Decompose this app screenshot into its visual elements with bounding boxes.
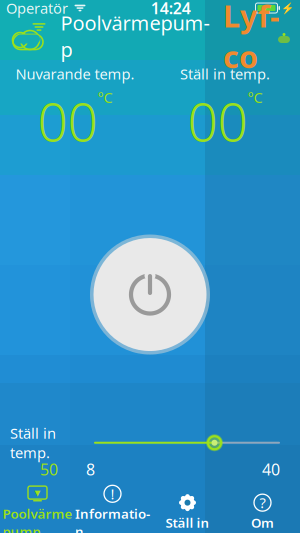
staticText: 00 (37, 85, 97, 156)
staticText: ▾ (34, 486, 40, 499)
staticText: Poolvärmepump (60, 9, 209, 62)
staticText: Ställ in temp. (180, 64, 270, 83)
staticText: °C (97, 87, 112, 107)
staticText: 40 (262, 459, 280, 480)
staticText: Om (251, 514, 274, 531)
staticText: 00 (187, 85, 247, 156)
button[interactable]: Av och på (90, 234, 210, 354)
button[interactable]: Lyfco (220, 19, 300, 53)
button[interactable]: Ställ in (150, 492, 225, 533)
staticText: Ställ in (165, 514, 209, 531)
staticText: 14:24 (151, 0, 191, 19)
staticText: ⚡ (281, 2, 294, 14)
staticText: Information (75, 505, 150, 533)
button[interactable]: ! (75, 492, 150, 533)
staticText: Poolvärme pump (2, 505, 72, 533)
staticText: Lyfco (223, 0, 280, 77)
staticText: Operatör (6, 0, 68, 18)
button[interactable]: ? (225, 492, 300, 533)
staticText (68, 0, 74, 23)
staticText: °C (247, 87, 262, 107)
staticText: ? (259, 493, 265, 512)
staticText: 50 (40, 459, 58, 480)
button[interactable]: Anslutning (0, 19, 50, 53)
staticText: Ställ in temp. (10, 423, 56, 462)
staticText: Nuvarande temp. (15, 64, 134, 83)
staticText: ! (110, 484, 114, 504)
button[interactable]: ▾ (0, 492, 75, 533)
staticText: 8 (86, 459, 95, 480)
